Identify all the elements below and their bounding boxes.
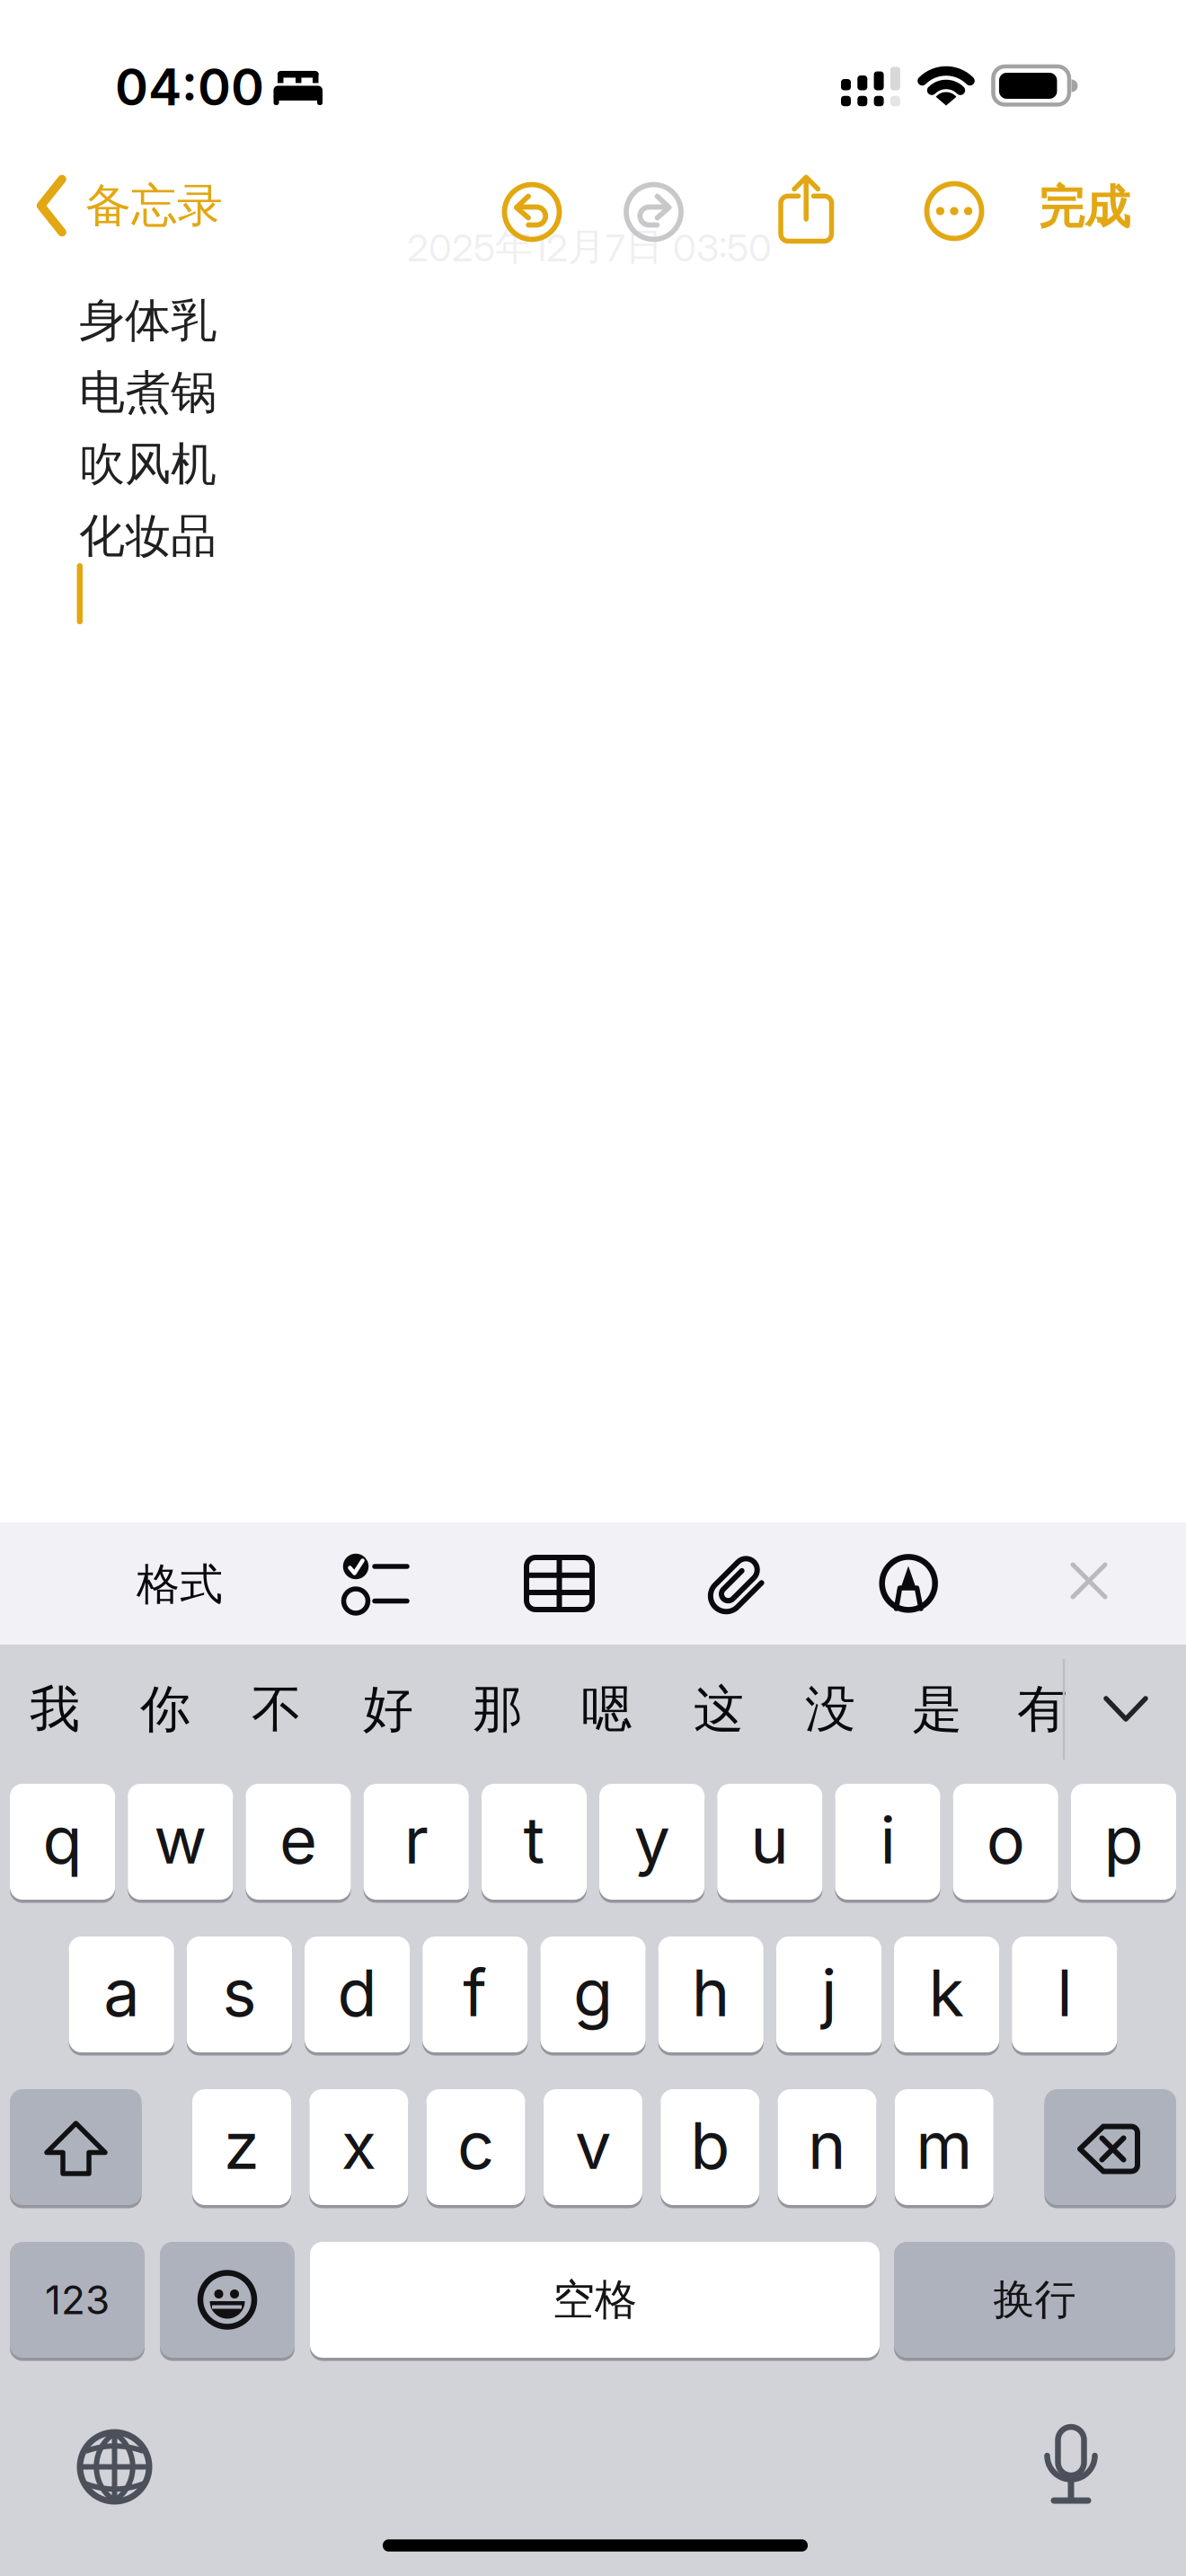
- staticText: a: [104, 1953, 139, 2032]
- button[interactable]: 是: [887, 1652, 987, 1767]
- staticText: 是: [912, 1678, 962, 1741]
- button[interactable]: 那: [447, 1652, 548, 1767]
- button[interactable]: c: [426, 2089, 525, 2205]
- button[interactable]: 撤销: [496, 176, 568, 248]
- button[interactable]: 我: [4, 1652, 105, 1767]
- staticText: 电煮锅: [79, 364, 217, 421]
- button[interactable]: 分享: [773, 166, 840, 251]
- button[interactable]: w: [128, 1784, 233, 1900]
- staticText: p: [1104, 1801, 1143, 1879]
- staticText: 我: [30, 1678, 80, 1741]
- staticText: b: [690, 2106, 730, 2184]
- staticText: 你: [140, 1678, 190, 1741]
- staticText: 那: [473, 1678, 523, 1741]
- staticText: 嗯: [581, 1678, 632, 1741]
- button[interactable]: 这: [668, 1652, 769, 1767]
- staticText: 没: [805, 1678, 855, 1741]
- button[interactable]: 空格: [310, 2242, 880, 2358]
- button[interactable]: 不: [226, 1652, 327, 1767]
- button[interactable]: 有: [992, 1652, 1093, 1767]
- button[interactable]: 核对清单: [325, 1534, 424, 1633]
- staticText: k: [929, 1953, 965, 2032]
- staticText: s: [222, 1953, 256, 2032]
- staticText: 备忘录: [85, 177, 223, 235]
- button[interactable]: u: [717, 1784, 822, 1900]
- button[interactable]: 重做: [618, 176, 690, 248]
- staticText: v: [575, 2106, 611, 2184]
- button[interactable]: x: [309, 2089, 408, 2205]
- button[interactable]: a: [69, 1936, 174, 2052]
- staticText: 身体乳: [79, 292, 217, 349]
- staticText: 完成: [1039, 179, 1130, 236]
- staticText: m: [916, 2106, 972, 2184]
- button[interactable]: l: [1012, 1936, 1117, 2052]
- button[interactable]: k: [894, 1936, 999, 2052]
- staticText: f: [463, 1953, 487, 2032]
- button[interactable]: 标记: [858, 1533, 957, 1632]
- staticText: y: [634, 1801, 670, 1879]
- button[interactable]: y: [599, 1784, 705, 1900]
- button[interactable]: 格式: [103, 1535, 256, 1634]
- button[interactable]: g: [540, 1936, 646, 2052]
- button[interactable]: 切换键盘: [61, 2413, 168, 2521]
- staticText: h: [692, 1953, 730, 2032]
- staticText: 换行: [993, 2274, 1076, 2326]
- button[interactable]: Shift: [10, 2089, 142, 2205]
- staticText: l: [1057, 1953, 1072, 2032]
- button[interactable]: e: [246, 1784, 351, 1900]
- button[interactable]: 完成: [1022, 176, 1147, 239]
- button[interactable]: m: [895, 2089, 994, 2205]
- button[interactable]: z: [192, 2089, 291, 2205]
- button[interactable]: s: [187, 1936, 292, 2052]
- staticText: z: [224, 2106, 260, 2184]
- staticText: u: [751, 1801, 789, 1879]
- button[interactable]: b: [661, 2089, 759, 2205]
- button[interactable]: q: [10, 1784, 115, 1900]
- staticText: w: [154, 1801, 207, 1879]
- button[interactable]: f: [422, 1936, 528, 2052]
- button[interactable]: 更多: [918, 175, 990, 247]
- button[interactable]: 123: [10, 2242, 145, 2358]
- button[interactable]: 好: [338, 1652, 438, 1767]
- button[interactable]: h: [658, 1936, 764, 2052]
- staticText: 有: [1017, 1678, 1067, 1741]
- staticText: i: [880, 1801, 895, 1879]
- staticText: 不: [252, 1678, 302, 1741]
- staticText: 好: [363, 1678, 413, 1741]
- button[interactable]: 附件: [686, 1533, 784, 1632]
- staticText: n: [808, 2106, 846, 2184]
- button[interactable]: v: [543, 2089, 642, 2205]
- staticText: 格式: [137, 1557, 223, 1612]
- staticText: 吹风机: [79, 436, 217, 493]
- button[interactable]: i: [835, 1784, 940, 1900]
- button[interactable]: 关闭: [1044, 1536, 1134, 1626]
- button[interactable]: 返回 备忘录: [27, 173, 238, 243]
- button[interactable]: 换行: [894, 2242, 1175, 2358]
- button[interactable]: 删除: [1044, 2089, 1176, 2205]
- staticText: j: [821, 1953, 836, 2032]
- staticText: d: [337, 1953, 377, 2032]
- button[interactable]: 嗯: [556, 1652, 657, 1767]
- button[interactable]: 没: [780, 1652, 881, 1767]
- staticText: r: [404, 1801, 428, 1879]
- button[interactable]: p: [1071, 1784, 1176, 1900]
- button[interactable]: t: [481, 1784, 587, 1900]
- staticText: e: [279, 1801, 317, 1879]
- staticText: q: [43, 1801, 82, 1879]
- staticText: g: [573, 1953, 613, 2032]
- staticText: 空格: [553, 2273, 637, 2326]
- staticText: 2025年12月7日 03:50: [407, 223, 772, 271]
- button[interactable]: 表情: [160, 2242, 295, 2358]
- button[interactable]: 收起候选栏: [1085, 1663, 1166, 1752]
- staticText: t: [523, 1801, 545, 1879]
- button[interactable]: o: [953, 1784, 1058, 1900]
- button[interactable]: d: [305, 1936, 410, 2052]
- staticText: c: [457, 2106, 494, 2184]
- button[interactable]: r: [364, 1784, 469, 1900]
- button[interactable]: 你: [115, 1652, 216, 1767]
- button[interactable]: 听写: [1016, 2407, 1124, 2515]
- button[interactable]: n: [778, 2089, 876, 2205]
- button[interactable]: j: [776, 1936, 881, 2052]
- staticText: 化妆品: [79, 507, 217, 565]
- button[interactable]: 表格: [508, 1534, 606, 1633]
